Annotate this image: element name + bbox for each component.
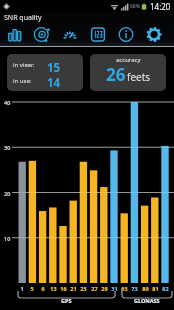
staticText: 73: [131, 285, 138, 292]
staticText: 15: [47, 60, 61, 76]
staticText: 30: [4, 144, 11, 151]
button[interactable]: Info: [112, 23, 140, 47]
staticText: 6: [41, 285, 45, 292]
staticText: 25: [80, 285, 87, 292]
staticText: 80: [142, 285, 149, 292]
staticText: 14: [47, 75, 61, 91]
button[interactable]: Raw numbers: [84, 23, 112, 47]
staticText: 5: [30, 285, 34, 292]
button[interactable]: Settings: [140, 23, 168, 47]
staticText: 1: [20, 285, 24, 292]
button[interactable]: Signal bars: [0, 23, 28, 47]
staticText: 20: [4, 190, 11, 197]
staticText: 21: [70, 285, 77, 292]
staticText: 13: [50, 285, 57, 292]
staticText: SNR quality: [4, 13, 42, 23]
button[interactable]: in view:: [7, 54, 83, 91]
staticText: in view:: [13, 61, 35, 69]
staticText: in use:: [13, 77, 32, 85]
staticText: accuracy: [116, 56, 141, 64]
staticText: GLONASS: [134, 297, 160, 304]
staticText: 16: [60, 285, 67, 292]
staticText: 27: [91, 285, 98, 292]
staticText: 26: [106, 63, 126, 86]
staticText: 29: [101, 285, 108, 292]
button[interactable]: accuracy: [90, 54, 166, 91]
staticText: 81: [152, 285, 159, 292]
staticText: 40: [4, 99, 11, 106]
staticText: feets: [127, 70, 151, 84]
staticText: 82: [162, 285, 169, 292]
staticText: 14:20: [150, 1, 171, 12]
staticText: 10: [4, 235, 11, 242]
button[interactable]: Sky view: [28, 23, 56, 47]
staticText: 65: [121, 285, 128, 292]
staticText: 68%: [130, 3, 140, 10]
button[interactable]: Speed: [56, 23, 84, 47]
staticText: GPS: [61, 297, 72, 304]
staticText: 31: [111, 285, 118, 292]
